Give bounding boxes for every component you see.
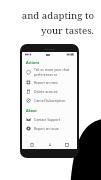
staticText: your tastes. [41, 24, 94, 37]
staticText: Cancel Subscription [34, 98, 66, 103]
button[interactable]: Contact Support [22, 115, 77, 124]
button[interactable]: Delete account [22, 87, 77, 96]
staticText: Actions [26, 60, 40, 65]
button[interactable]: Discover [43, 141, 57, 149]
staticText: Report an issue [34, 126, 59, 131]
button[interactable]: Cancel Subscription [22, 96, 77, 105]
staticText: Report an item [34, 80, 58, 85]
button[interactable]: Tell us more your chat [22, 67, 77, 78]
staticText: About [26, 108, 37, 113]
staticText: preferences or restrictions [34, 72, 73, 78]
staticText: Tell us more your chat [34, 67, 70, 72]
button[interactable]: Report an issue [22, 124, 77, 133]
button[interactable]: Report an item [22, 78, 77, 87]
staticText: Contact Support [34, 117, 60, 122]
staticText: and adapting to [21, 9, 94, 22]
button[interactable]: Profile [60, 141, 74, 149]
button[interactable]: Home [25, 141, 39, 149]
staticText: Delete account [34, 89, 58, 94]
